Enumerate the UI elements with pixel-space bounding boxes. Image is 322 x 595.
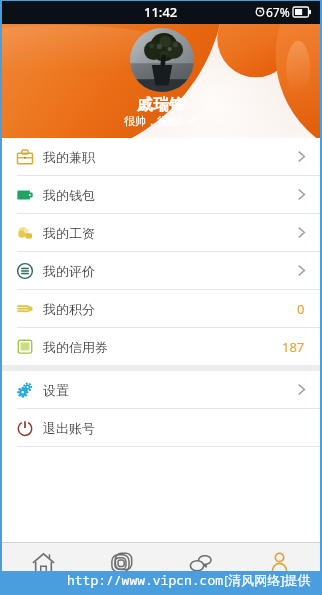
- button[interactable]: 设置: [2, 371, 320, 408]
- staticText: http://www.vipcn.com: [67, 571, 224, 589]
- staticText: 戚瑞锋: [137, 95, 185, 115]
- staticText: 11:42: [144, 3, 178, 21]
- button[interactable]: 我的信用券: [2, 328, 320, 365]
- staticText: [清风网络]提供: [224, 571, 311, 589]
- button[interactable]: 我的钱包: [2, 176, 320, 213]
- button[interactable]: 退出账号: [2, 409, 320, 446]
- button[interactable]: 我的积分: [2, 290, 320, 327]
- staticText: 个人: [270, 576, 288, 587]
- staticText: 设置: [43, 382, 69, 398]
- button[interactable]: 首页: [6, 543, 80, 589]
- staticText: 信息: [191, 578, 209, 589]
- staticText: 我的评价: [43, 263, 95, 279]
- staticText: 我的信用券: [43, 339, 108, 355]
- staticText: 很帅，很酷!: [124, 113, 182, 128]
- other: Edit profile: [187, 115, 198, 126]
- staticText: 比比: [113, 577, 131, 588]
- staticText: 0: [297, 300, 305, 318]
- staticText: 67%: [266, 4, 290, 20]
- button[interactable]: 比比: [85, 543, 159, 588]
- staticText: 我的兼职: [43, 149, 95, 165]
- staticText: 退出账号: [43, 420, 95, 436]
- button[interactable]: 信息: [163, 543, 237, 589]
- staticText: 我的钱包: [43, 187, 95, 203]
- button[interactable]: 个人: [242, 543, 316, 587]
- button[interactable]: 我的评价: [2, 252, 320, 289]
- button[interactable]: 我的兼职: [2, 138, 320, 175]
- staticText: 我的积分: [43, 301, 95, 317]
- button[interactable]: 我的工资: [2, 214, 320, 251]
- staticText: 187: [282, 338, 305, 356]
- staticText: 我的工资: [43, 225, 95, 241]
